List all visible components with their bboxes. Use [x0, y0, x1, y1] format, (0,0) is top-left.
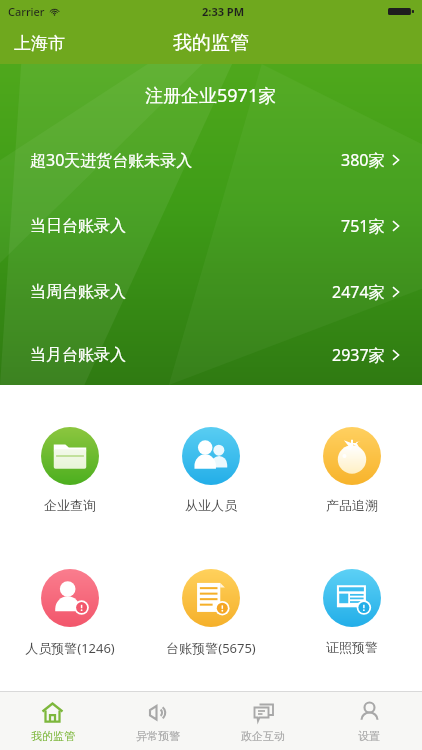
staticText: 2474家 [332, 281, 385, 303]
staticText: 380家 [341, 149, 385, 171]
button[interactable]: 台账预警 [140, 565, 281, 661]
staticText: 当周台账录入 [30, 282, 126, 302]
staticText: 751家 [341, 215, 385, 237]
staticText: 当月台账录入 [30, 345, 126, 365]
staticText: 产品追溯 [326, 497, 378, 513]
staticText: 人员预警(1246) [25, 639, 115, 657]
staticText: 台账预警(5675) [166, 639, 256, 657]
button[interactable]: 当日台账录入 [0, 193, 422, 259]
button[interactable]: 异常预警 [105, 692, 210, 750]
button[interactable]: 从业人员 [140, 423, 281, 517]
other: 证照预警 [323, 569, 381, 627]
button[interactable]: 政企互动 [210, 692, 316, 750]
button[interactable]: 产品追溯 [281, 423, 422, 517]
staticText: 注册企业5971家 [145, 83, 277, 108]
staticText: 设置 [358, 729, 380, 743]
staticText: 政企互动 [241, 729, 285, 743]
other: 从业人员 [182, 427, 240, 485]
staticText: 当日台账录入 [30, 216, 126, 236]
staticText: 2:33 PM [202, 4, 245, 19]
button[interactable]: 超30天进货台账未录入 [0, 127, 422, 193]
button[interactable]: 人员预警 [0, 565, 140, 661]
button[interactable]: 当月台账录入 [0, 325, 422, 385]
staticText: 2937家 [332, 344, 385, 366]
button[interactable]: 上海市 [0, 29, 73, 58]
staticText: 我的监管 [173, 31, 249, 55]
button[interactable]: 证照预警 [281, 565, 422, 659]
staticText: 超30天进货台账未录入 [30, 149, 193, 171]
other: 人员预警 [41, 569, 99, 627]
button[interactable]: 设置 [316, 692, 422, 750]
staticText: Carrier [8, 4, 45, 19]
other: 企业查询 [41, 427, 99, 485]
staticText: 证照预警 [326, 639, 378, 655]
other: 产品追溯 [323, 427, 381, 485]
button[interactable]: 企业查询 [0, 423, 140, 517]
staticText: 企业查询 [44, 497, 96, 513]
button[interactable]: 我的监管 [0, 692, 105, 750]
staticText: 我的监管 [31, 729, 75, 743]
button[interactable]: 当周台账录入 [0, 259, 422, 325]
staticText: 从业人员 [185, 497, 237, 513]
other: 台账预警 [182, 569, 240, 627]
staticText: 异常预警 [136, 729, 180, 743]
